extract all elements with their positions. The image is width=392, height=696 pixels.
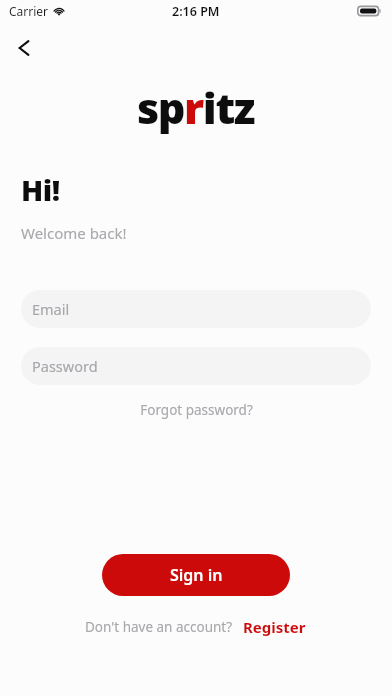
- staticText: Register: [243, 617, 306, 637]
- staticText: Password: [32, 356, 98, 376]
- button[interactable]: Password: [21, 347, 371, 385]
- button[interactable]: Back: [4, 26, 48, 70]
- button[interactable]: Register: [241, 614, 308, 640]
- staticText: Email: [32, 299, 70, 319]
- staticText: Sign in: [170, 564, 223, 586]
- staticText: Forgot password?: [140, 401, 253, 419]
- staticText: Carrier: [9, 3, 49, 19]
- staticText: Hi!: [21, 170, 60, 209]
- staticText: spritz: [137, 78, 255, 137]
- staticText: Welcome back!: [21, 223, 127, 243]
- staticText: 2:16 PM: [172, 3, 220, 20]
- button[interactable]: Sign in: [102, 554, 290, 596]
- button[interactable]: Email: [21, 290, 371, 328]
- button[interactable]: Forgot password?: [130, 397, 263, 423]
- staticText: Don't have an account?: [85, 618, 233, 636]
